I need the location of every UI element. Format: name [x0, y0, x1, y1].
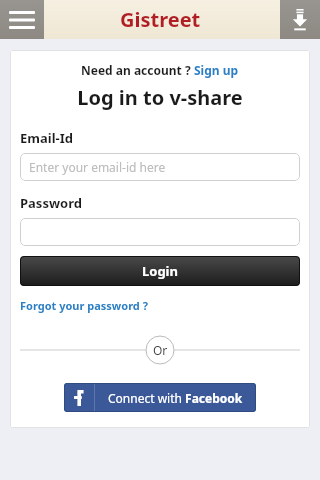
staticText: Or: [153, 342, 168, 358]
staticText: Sign up: [194, 62, 239, 78]
staticText: Connect with Facebook: [108, 390, 243, 406]
button[interactable]: Download: [280, 0, 320, 39]
button[interactable]: Connect with Facebook: [64, 383, 256, 412]
staticText: Forgot your password ?: [20, 298, 148, 313]
button[interactable]: Menu: [0, 0, 44, 39]
button[interactable]: Sign up: [194, 62, 239, 78]
button[interactable]: Enter your email-id here: [20, 153, 300, 181]
button[interactable]: Login: [20, 256, 300, 286]
button[interactable]: Forgot your password ?: [20, 298, 148, 313]
staticText: Login: [142, 262, 178, 280]
staticText: Password: [20, 194, 82, 212]
staticText: Log in to v-share: [77, 84, 243, 111]
staticText: Enter your email-id here: [29, 159, 166, 175]
staticText: Email-Id: [20, 129, 73, 147]
staticText: Need an account ?: [81, 62, 194, 78]
button[interactable]: [20, 218, 300, 246]
staticText: Gistreet: [120, 6, 201, 33]
